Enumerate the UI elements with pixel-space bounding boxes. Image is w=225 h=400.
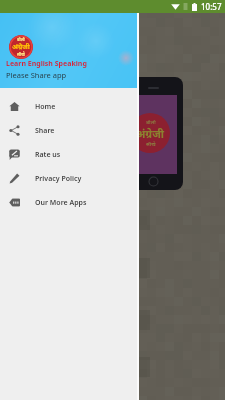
staticText: Please Share app	[6, 70, 67, 80]
staticText: अंग्रेजी	[12, 42, 30, 52]
button[interactable]: Our More Apps	[0, 191, 139, 215]
staticText: अंग्रेजी	[136, 126, 165, 141]
button[interactable]: Close navigation drawer	[139, 0, 225, 400]
staticText: 10:57	[201, 1, 222, 12]
button[interactable]: Rate us	[0, 143, 139, 167]
staticText: Home	[35, 102, 56, 112]
button[interactable]: Home	[0, 95, 139, 119]
staticText: Share	[35, 126, 55, 136]
button[interactable]: Privacy Policy	[0, 167, 139, 191]
staticText: सीखे	[17, 52, 25, 57]
staticText: सीखे	[146, 141, 156, 148]
staticText: Learn English Speaking	[6, 59, 87, 69]
staticText: Rate us	[35, 150, 61, 160]
staticText: Our More Apps	[35, 198, 87, 208]
staticText: बोलो	[17, 37, 25, 42]
button[interactable]: बोलो	[0, 13, 139, 88]
button[interactable]: Share	[0, 119, 139, 143]
staticText: Privacy Policy	[35, 174, 82, 184]
staticText: बोलो	[146, 119, 156, 126]
